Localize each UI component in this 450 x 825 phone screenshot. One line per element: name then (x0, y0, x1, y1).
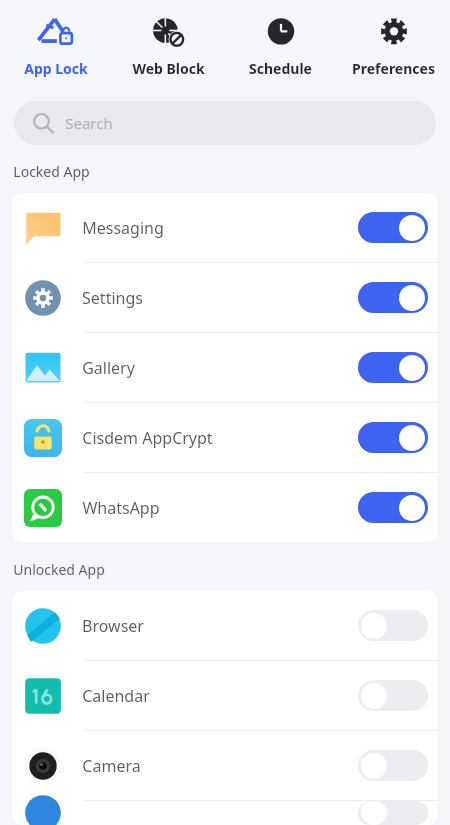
staticText: Locked App (13, 162, 90, 181)
staticText: WhatsApp (82, 497, 160, 519)
staticText: Gallery (82, 357, 135, 379)
staticText: Camera (82, 755, 141, 777)
button[interactable]: Camera (12, 731, 438, 800)
staticText: Browser (82, 615, 144, 637)
button[interactable]: Toggle off (358, 750, 428, 781)
button[interactable]: Toggle off (358, 801, 428, 825)
staticText: Preferences (352, 59, 435, 78)
button[interactable]: Search (14, 101, 436, 145)
staticText: Cisdem AppCrypt (82, 427, 213, 449)
staticText: Unlocked App (13, 560, 105, 579)
staticText: Search (65, 113, 113, 133)
button[interactable]: Browser (12, 591, 438, 660)
button[interactable]: Cisdem AppCrypt (12, 403, 438, 472)
button[interactable]: Preferences (337, 0, 450, 92)
button[interactable]: Settings (12, 263, 438, 332)
staticText: Messaging (82, 217, 164, 239)
button[interactable]: Toggle on (358, 212, 428, 243)
button[interactable]: Schedule (224, 0, 337, 92)
staticText: Schedule (249, 59, 312, 78)
button[interactable]: Web Block (112, 0, 224, 92)
button[interactable]: Messaging (12, 193, 438, 262)
button[interactable]: Toggle on (358, 282, 428, 313)
staticText: Web Block (132, 59, 205, 78)
button[interactable]: Calendar (12, 661, 438, 730)
staticText: App Lock (24, 59, 88, 78)
staticText: Settings (82, 287, 143, 309)
button[interactable]: Toggle on (358, 492, 428, 523)
staticText: Calendar (82, 685, 150, 707)
button[interactable]: Toggle off (12, 801, 438, 825)
button[interactable]: WhatsApp (12, 473, 438, 542)
button[interactable]: Toggle off (358, 680, 428, 711)
button[interactable]: Toggle off (358, 610, 428, 641)
button[interactable]: Toggle on (358, 422, 428, 453)
button[interactable]: App Lock (0, 0, 112, 92)
button[interactable]: Toggle on (358, 352, 428, 383)
button[interactable]: Gallery (12, 333, 438, 402)
